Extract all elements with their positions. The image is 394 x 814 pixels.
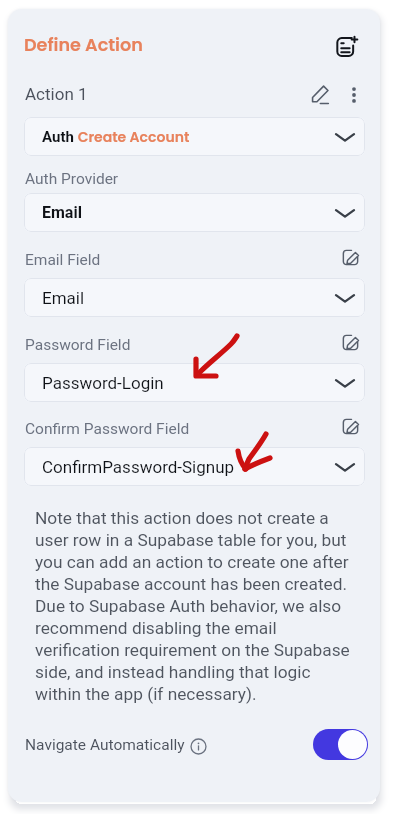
staticText: Confirm Password Field: [25, 420, 190, 438]
staticText: Email: [42, 288, 85, 308]
button[interactable]: Add action: [327, 26, 366, 65]
staticText: Auth Provider: [25, 170, 119, 188]
button[interactable]: Password-Login: [24, 363, 365, 402]
button[interactable]: Edit field: [336, 412, 364, 440]
button[interactable]: Navigate Automatically toggle: [313, 729, 368, 760]
staticText: ConfirmPassword-Signup: [42, 457, 235, 477]
staticText: Email: [42, 203, 82, 222]
button[interactable]: Edit field: [336, 328, 364, 356]
staticText: Password-Login: [42, 373, 164, 393]
button[interactable]: Edit: [306, 79, 337, 110]
staticText: Action 1: [25, 84, 88, 104]
staticText: Email Field: [25, 251, 101, 269]
staticText: Password Field: [25, 336, 131, 354]
button[interactable]: Edit field: [336, 243, 364, 271]
button[interactable]: Auth Create Account: [24, 117, 365, 156]
staticText: Define Action: [24, 33, 143, 58]
button[interactable]: ConfirmPassword-Signup: [24, 447, 365, 486]
button[interactable]: Email: [24, 278, 365, 317]
button[interactable]: More options: [338, 79, 369, 110]
staticText: Navigate Automatically: [25, 736, 185, 754]
button[interactable]: Email: [24, 193, 365, 232]
staticText: Note that this action does not create a …: [35, 508, 358, 704]
staticText: Auth Create Account: [42, 127, 190, 147]
